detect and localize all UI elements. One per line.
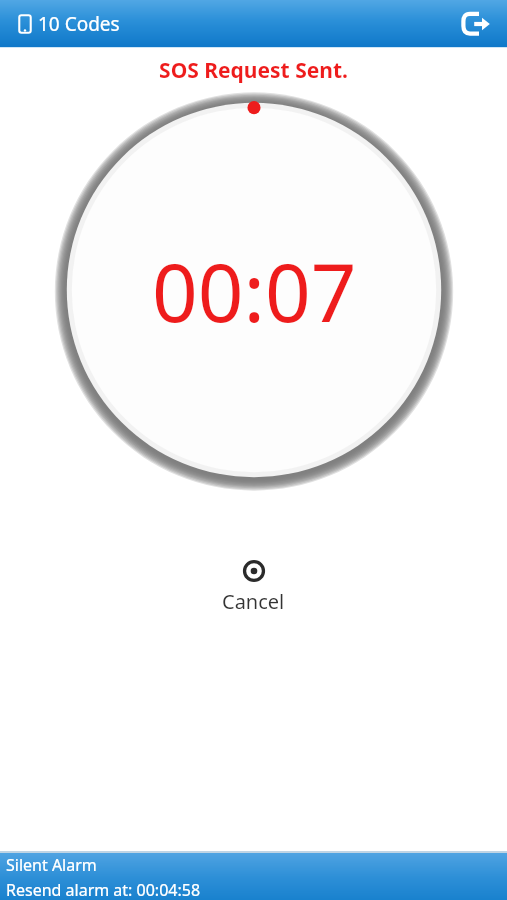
staticText: 00:07 <box>152 236 357 345</box>
staticText: Cancel <box>222 588 285 615</box>
button[interactable]: Silent Alarm <box>0 853 507 900</box>
staticText: 10 Codes <box>38 11 120 37</box>
button[interactable]: Log out <box>459 7 493 41</box>
staticText: Silent Alarm <box>6 854 97 876</box>
button[interactable]: 10 Codes <box>14 11 120 37</box>
staticText: Resend alarm at: 00:04:58 <box>6 879 201 900</box>
button[interactable]: Cancel <box>222 560 285 615</box>
staticText: SOS Request Sent. <box>0 56 507 85</box>
